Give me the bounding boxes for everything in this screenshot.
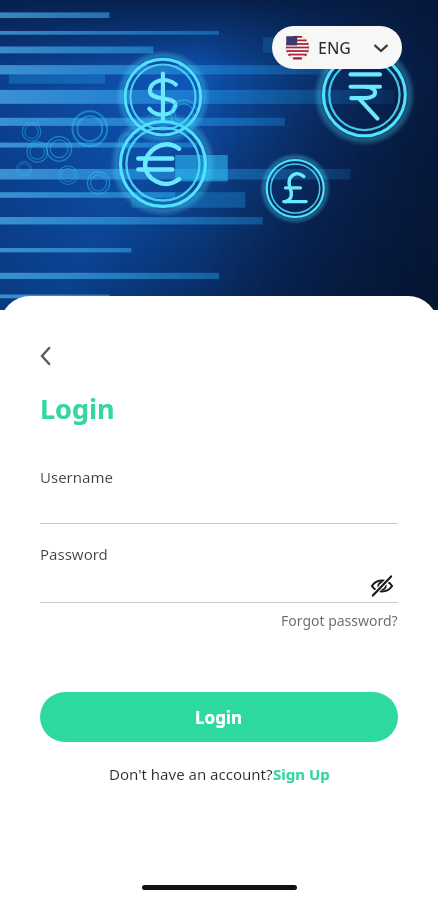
button[interactable]: Toggle password visibility xyxy=(366,570,398,602)
button[interactable]: Login xyxy=(40,692,398,742)
staticText: Don't have an account? xyxy=(109,764,273,784)
button[interactable]: Sign Up xyxy=(273,764,330,784)
staticText: Password xyxy=(40,544,108,564)
button[interactable]: Forgot password? xyxy=(281,611,438,630)
staticText: Login xyxy=(40,390,115,427)
button[interactable]: Back xyxy=(28,338,64,374)
staticText: Username xyxy=(40,467,113,487)
staticText: Login xyxy=(195,706,243,729)
staticText: ENG xyxy=(318,37,351,59)
button[interactable]: ENG xyxy=(272,26,402,69)
